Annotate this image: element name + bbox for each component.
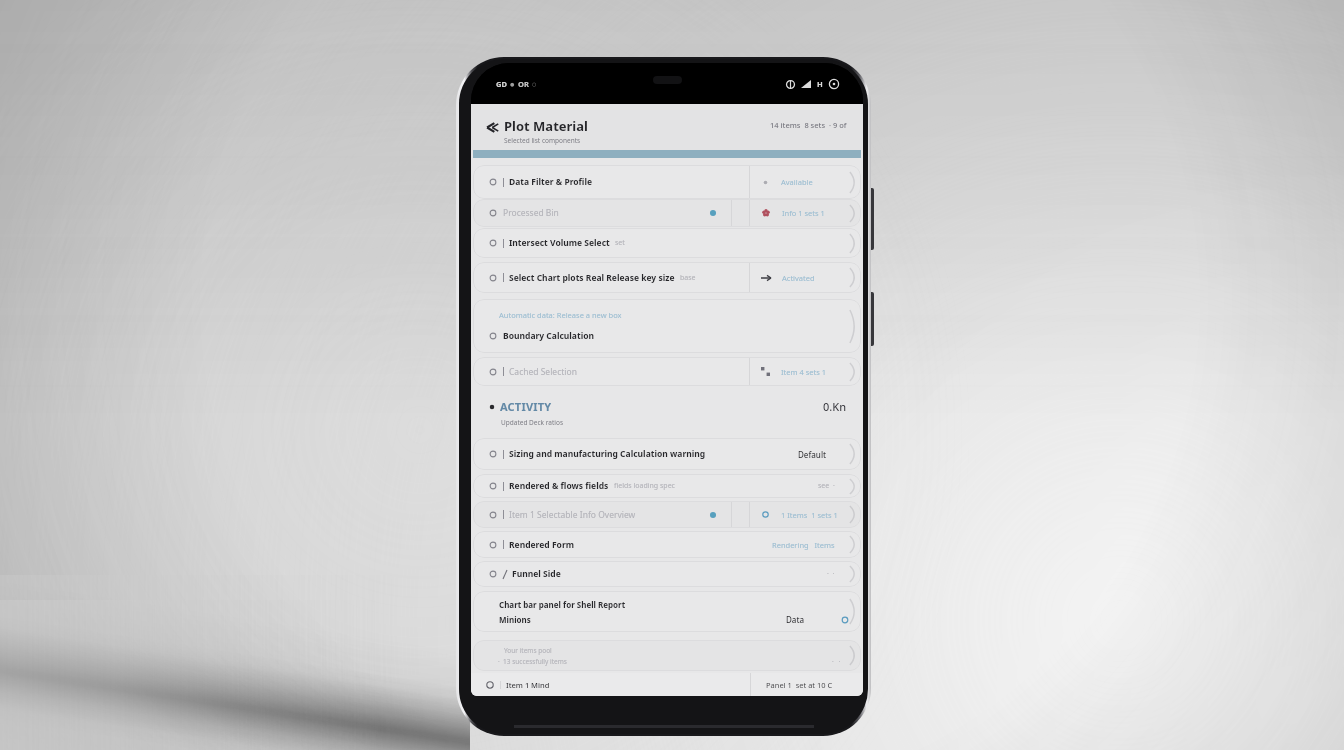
button[interactable]: Rendered & flows fields <box>473 474 861 498</box>
staticText: H <box>817 79 823 89</box>
button[interactable]: Automatic data: Release a new box <box>473 299 861 353</box>
button[interactable]: Chart bar panel for Shell Report <box>473 591 861 632</box>
staticText: 1 Items 1 sets 1 <box>781 510 838 520</box>
staticText: ● <box>510 81 515 87</box>
staticText: Cached Selection <box>509 366 577 378</box>
staticText: set <box>615 238 625 248</box>
staticText: see · <box>818 481 835 491</box>
button[interactable]: 14 items 8 sets · 9 of <box>770 120 847 130</box>
staticText: base <box>680 273 696 283</box>
staticText: Data Filter & Profile <box>509 176 593 188</box>
staticText: Panel 1 set at 10 C <box>766 680 833 690</box>
staticText: Chart bar panel for Shell Report <box>499 599 626 610</box>
button[interactable]: Item 1 Selectable Info Overview <box>473 501 861 528</box>
staticText: Available <box>781 177 813 187</box>
staticText: Item 1 Selectable Info Overview <box>509 509 636 521</box>
button[interactable]: Funnel Side <box>473 561 861 587</box>
button[interactable]: Rendered Form <box>473 531 861 558</box>
staticText: Updated Deck ratios <box>501 418 564 427</box>
staticText: · <box>498 657 500 666</box>
staticText: fields loading spec <box>614 481 675 491</box>
staticText: Selected list components <box>504 136 581 145</box>
button[interactable]: Data Filter & Profile <box>473 165 861 199</box>
staticText: · · <box>827 569 835 579</box>
button[interactable]: Processed Bin <box>473 199 861 227</box>
staticText: 0.Kn <box>823 399 847 414</box>
button[interactable]: 0.Kn <box>823 399 847 414</box>
staticText: Sizing and manufacturing Calculation war… <box>509 448 706 460</box>
button[interactable]: Cached Selection <box>473 357 861 386</box>
staticText: Funnel Side <box>512 568 561 580</box>
button[interactable]: ACTIVITY <box>488 399 552 414</box>
staticText: ○ <box>532 81 537 87</box>
staticText: GD <box>496 79 507 89</box>
button[interactable]: Your items pool <box>473 640 861 671</box>
button[interactable]: Intersect Volume Select <box>473 228 861 258</box>
staticText: Boundary Calculation <box>503 330 595 342</box>
staticText: Info 1 sets 1 <box>782 208 825 218</box>
staticText: Default <box>798 449 827 460</box>
staticText: Data <box>786 614 805 625</box>
staticText: Item 4 sets 1 <box>781 367 827 377</box>
staticText: Plot Material <box>504 117 588 135</box>
button[interactable]: Plot Material <box>504 117 588 145</box>
staticText: Automatic data: Release a new box <box>499 310 622 320</box>
staticText: Intersect Volume Select <box>509 237 610 249</box>
button[interactable]: Sizing and manufacturing Calculation war… <box>473 438 861 470</box>
staticText: Activated <box>782 273 815 283</box>
staticText: 14 items 8 sets · 9 of <box>770 120 847 130</box>
staticText: OR <box>518 79 529 89</box>
staticText: Rendered Form <box>509 539 574 551</box>
staticText: Processed Bin <box>503 207 559 219</box>
staticText: Item 1 Mind <box>506 680 550 690</box>
staticText: Rendering Items <box>772 540 835 550</box>
staticText: Rendered & flows fields <box>509 480 609 492</box>
button[interactable]: Item 1 Mind <box>471 673 863 696</box>
staticText: Select Chart plots Real Release key size <box>509 272 675 284</box>
staticText: Minions <box>499 614 531 625</box>
staticText: · · <box>832 657 843 666</box>
staticText: Your items pool <box>504 646 552 655</box>
button[interactable]: Select Chart plots Real Release key size <box>473 262 861 293</box>
staticText: ACTIVITY <box>500 399 552 414</box>
button[interactable]: Back <box>481 117 501 137</box>
staticText: 13 successfully items <box>503 657 567 666</box>
